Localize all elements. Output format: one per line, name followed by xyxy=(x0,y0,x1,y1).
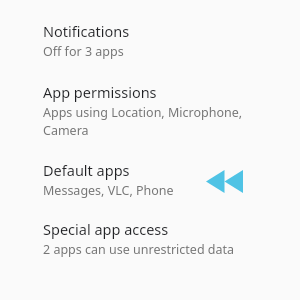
staticText: Special app access xyxy=(43,219,169,239)
button[interactable]: Special app access xyxy=(0,219,300,258)
staticText: Off for 3 apps xyxy=(43,43,265,60)
staticText: Notifications xyxy=(43,21,130,41)
button[interactable]: Notifications xyxy=(0,21,300,60)
staticText: App permissions xyxy=(43,82,157,102)
button[interactable]: Default apps xyxy=(0,160,300,199)
staticText: Default apps xyxy=(43,160,130,180)
staticText: Messages, VLC, Phone xyxy=(43,182,228,199)
button[interactable]: App permissions xyxy=(0,82,300,139)
staticText: 2 apps can use unrestricted data xyxy=(43,241,280,258)
button[interactable]: Rewind xyxy=(206,170,243,193)
staticText: Apps using Location, Microphone, Camera xyxy=(43,104,273,139)
